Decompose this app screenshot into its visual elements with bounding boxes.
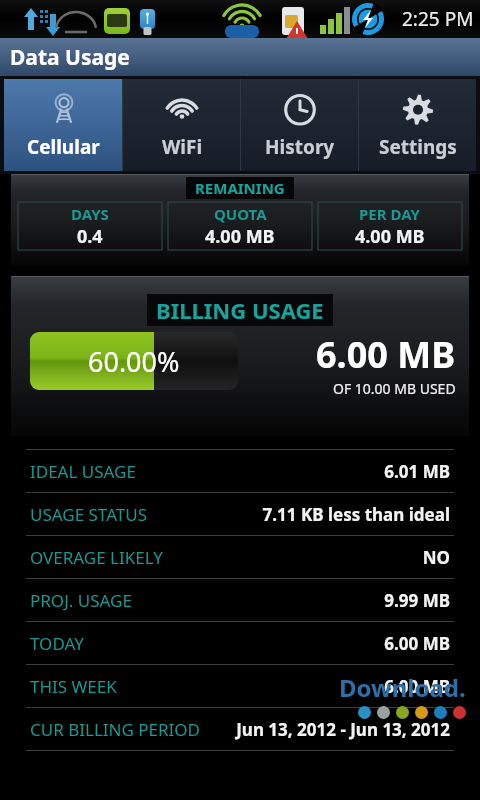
staticText: 6.00 MB [384, 675, 450, 698]
button[interactable]: Cellular [4, 79, 122, 171]
staticText: 9.99 MB [384, 589, 450, 612]
staticText: QUOTA [214, 204, 267, 224]
staticText: BILLING USAGE [156, 295, 324, 325]
staticText: 7.11 KB less than ideal [262, 503, 450, 526]
staticText: 4.00 MB [205, 224, 275, 249]
staticText: USAGE STATUS [30, 503, 148, 526]
staticText: Jun 13, 2012 - Jun 13, 2012 [236, 718, 450, 741]
staticText: 6.00 MB [316, 330, 456, 379]
staticText: 6.01 MB [384, 460, 450, 483]
staticText: 0.4 [77, 224, 103, 249]
staticText: OVERAGE LIKELY [30, 546, 163, 569]
staticText: TODAY [30, 632, 84, 655]
staticText: History [265, 134, 335, 160]
staticText: Cellular [27, 134, 100, 160]
button[interactable]: History [241, 79, 358, 171]
staticText: PER DAY [359, 204, 421, 224]
button[interactable]: Settings [359, 79, 476, 171]
staticText: NO [422, 546, 450, 569]
staticText: Data Usage [10, 43, 130, 72]
staticText: 4.00 MB [355, 224, 425, 249]
button[interactable]: 60.00% [30, 332, 238, 390]
button[interactable]: THIS WEEK [0, 665, 480, 707]
staticText: CUR BILLING PERIOD [30, 718, 201, 741]
staticText: DAYS [71, 204, 109, 224]
button[interactable]: WiFi [123, 79, 240, 171]
staticText: THIS WEEK [30, 675, 117, 698]
staticText: OF 10.00 MB USED [333, 379, 456, 398]
staticText: 2:25 PM [402, 6, 474, 32]
button[interactable]: USAGE STATUS [0, 493, 480, 535]
staticText: WiFi [162, 134, 203, 160]
button[interactable]: PROJ. USAGE [0, 579, 480, 621]
button[interactable]: IDEAL USAGE [0, 450, 480, 492]
staticText: REMAINING [195, 178, 285, 198]
staticText: 60.00% [88, 343, 180, 380]
staticText: Settings [379, 134, 457, 160]
staticText: Download. [339, 671, 466, 704]
button[interactable]: TODAY [0, 622, 480, 664]
button[interactable]: OVERAGE LIKELY [0, 536, 480, 578]
staticText: PROJ. USAGE [30, 589, 132, 612]
staticText: IDEAL USAGE [30, 460, 136, 483]
button[interactable]: CUR BILLING PERIOD [0, 708, 480, 750]
staticText: 6.00 MB [384, 632, 450, 655]
